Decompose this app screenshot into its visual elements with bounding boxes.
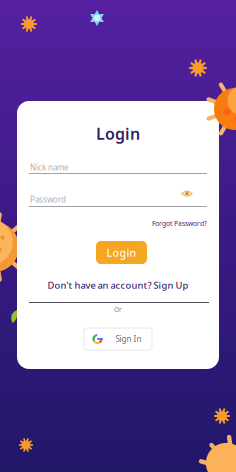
staticText: Don't have an account? Sign Up bbox=[47, 279, 188, 291]
button[interactable]: Sign In bbox=[84, 328, 152, 350]
button[interactable]: Show password bbox=[181, 190, 193, 198]
staticText: Login bbox=[96, 123, 140, 144]
staticText: Forgot Password? bbox=[152, 219, 207, 228]
button[interactable]: Don't have an account? Sign Up bbox=[17, 279, 219, 291]
staticText: Or bbox=[114, 305, 122, 314]
button[interactable]: Forgot Password? bbox=[29, 219, 207, 228]
staticText: Password bbox=[30, 194, 66, 205]
staticText: Sign In bbox=[115, 334, 141, 344]
staticText: Login bbox=[106, 245, 136, 260]
button[interactable]: Login bbox=[96, 241, 147, 264]
staticText: Nick name bbox=[30, 162, 69, 173]
